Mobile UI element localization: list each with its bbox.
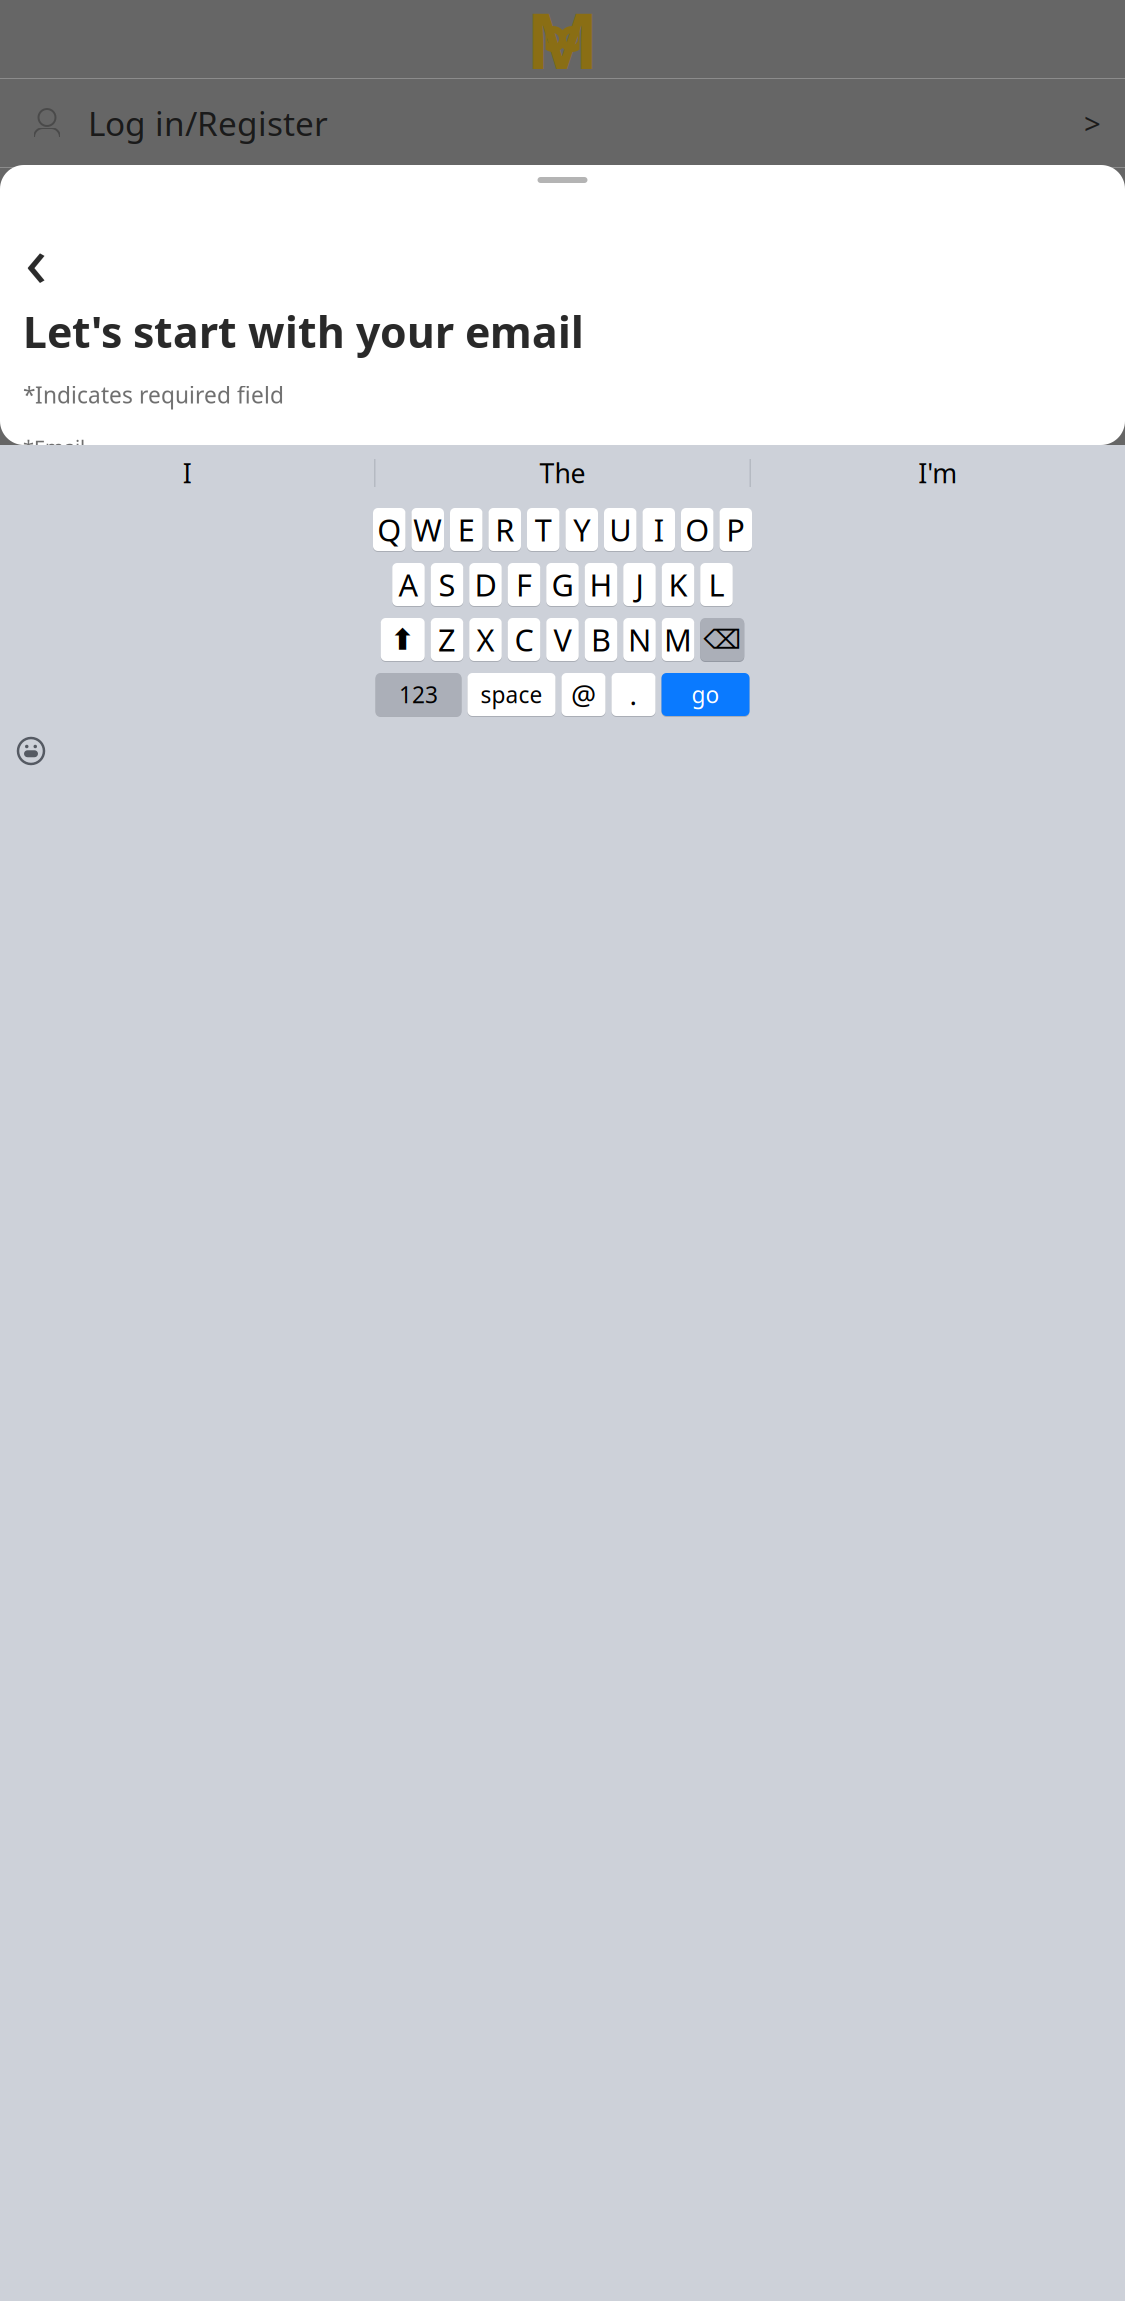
button[interactable]: N bbox=[623, 617, 656, 662]
button[interactable]: H bbox=[585, 562, 617, 607]
button[interactable]: V bbox=[546, 617, 579, 662]
button[interactable]: Q bbox=[373, 507, 405, 552]
staticText: U bbox=[609, 509, 631, 550]
button[interactable]: 123 bbox=[375, 672, 461, 717]
button[interactable]: C bbox=[508, 617, 540, 662]
staticText: . bbox=[629, 676, 637, 713]
button[interactable]: space bbox=[467, 672, 555, 717]
button[interactable]: O bbox=[681, 507, 713, 552]
staticText: I bbox=[183, 455, 192, 491]
button[interactable]: go bbox=[661, 672, 749, 717]
staticText: 123 bbox=[399, 679, 438, 709]
staticText: J bbox=[635, 564, 643, 605]
staticText: The bbox=[539, 455, 585, 491]
staticText: P bbox=[726, 509, 745, 550]
button[interactable]: I'm bbox=[751, 449, 1125, 497]
staticText: Q bbox=[377, 509, 401, 550]
staticText: X bbox=[476, 619, 494, 660]
button[interactable]: Y bbox=[565, 507, 598, 552]
staticText: E bbox=[458, 509, 475, 550]
button[interactable]: D bbox=[469, 562, 502, 607]
staticText: M bbox=[526, 0, 599, 90]
staticText: go bbox=[691, 679, 719, 709]
button[interactable]: W bbox=[411, 507, 444, 552]
staticText: Z bbox=[438, 619, 456, 660]
staticText: G bbox=[551, 564, 573, 605]
button[interactable]: F bbox=[508, 562, 540, 607]
staticText: *Email bbox=[23, 434, 85, 460]
staticText: K bbox=[668, 564, 687, 605]
staticText: ⬆ bbox=[390, 623, 415, 656]
staticText: ⌫ bbox=[703, 624, 741, 655]
staticText: W bbox=[413, 509, 442, 550]
staticText: > bbox=[1084, 103, 1101, 142]
button[interactable]: J bbox=[623, 562, 656, 607]
button[interactable]: A bbox=[392, 562, 425, 607]
staticText: Log in/Register bbox=[88, 101, 328, 145]
button[interactable]: The bbox=[375, 449, 750, 497]
button[interactable]: @ bbox=[561, 672, 605, 717]
staticText: F bbox=[516, 564, 532, 605]
staticText: T bbox=[535, 509, 552, 550]
button[interactable]: Back bbox=[14, 237, 58, 281]
button[interactable]: U bbox=[604, 507, 636, 552]
button[interactable]: . bbox=[611, 672, 655, 717]
button[interactable]: Delete bbox=[700, 617, 744, 662]
button[interactable]: S bbox=[431, 562, 463, 607]
staticText: D bbox=[474, 564, 496, 605]
button[interactable]: K bbox=[662, 562, 694, 607]
staticText: R bbox=[495, 509, 514, 550]
staticText: V bbox=[553, 619, 571, 660]
staticText: M bbox=[664, 619, 692, 660]
staticText: H bbox=[589, 564, 612, 605]
button[interactable]: I bbox=[642, 507, 675, 552]
staticText: @ bbox=[571, 676, 596, 713]
button[interactable]: Z bbox=[431, 617, 463, 662]
staticText: A bbox=[398, 564, 418, 605]
button[interactable]: X bbox=[469, 617, 502, 662]
button[interactable]: Shift bbox=[381, 617, 425, 662]
staticText: I'm bbox=[918, 455, 957, 491]
staticText: Let's start with your email bbox=[23, 303, 584, 360]
staticText: Y bbox=[573, 509, 590, 550]
button[interactable]: I bbox=[0, 449, 374, 497]
button[interactable]: E bbox=[450, 507, 482, 552]
staticText: B bbox=[591, 619, 611, 660]
staticText: L bbox=[708, 564, 724, 605]
staticText: ‹ bbox=[25, 211, 47, 307]
button[interactable]: T bbox=[527, 507, 559, 552]
button[interactable]: M bbox=[662, 617, 694, 662]
staticText: space bbox=[480, 679, 542, 709]
staticText: I bbox=[654, 509, 664, 550]
button[interactable]: R bbox=[488, 507, 521, 552]
staticText: O bbox=[685, 509, 709, 550]
staticText: C bbox=[514, 619, 533, 660]
button[interactable]: G bbox=[546, 562, 579, 607]
staticText: N bbox=[628, 619, 651, 660]
button[interactable]: P bbox=[719, 507, 752, 552]
button[interactable]: L bbox=[700, 562, 733, 607]
staticText: *Indicates required field bbox=[23, 380, 284, 410]
staticText: S bbox=[438, 564, 455, 605]
button[interactable]: B bbox=[585, 617, 617, 662]
button[interactable]: Emoji keyboard bbox=[9, 729, 53, 773]
